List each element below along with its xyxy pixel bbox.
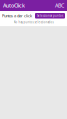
- staticText: Seleccionar puntos: [37, 14, 63, 17]
- staticText: A: [55, 2, 58, 9]
- staticText: B: [58, 2, 61, 9]
- button[interactable]: Delete: [55, 2, 58, 9]
- staticText: AutoClick: [3, 2, 25, 9]
- button[interactable]: Accessibility: [58, 2, 61, 9]
- staticText: Puntos a dar click: [2, 13, 32, 18]
- button[interactable]: More: [61, 2, 64, 9]
- staticText: No hay puntos seleccionados: [13, 20, 53, 24]
- button[interactable]: Seleccionar puntos: [35, 13, 65, 18]
- staticText: C: [61, 2, 64, 9]
